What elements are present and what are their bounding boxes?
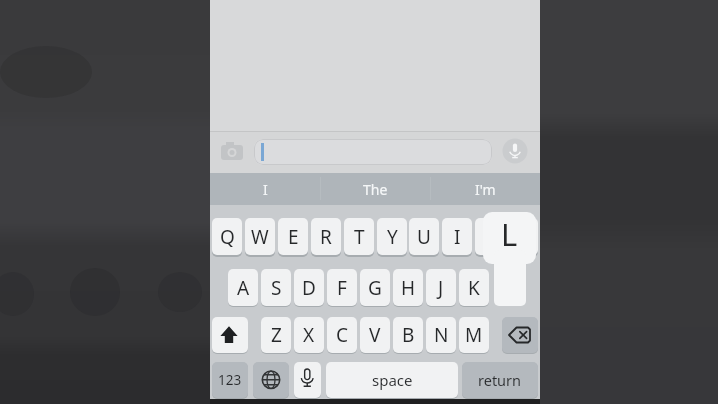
button[interactable]: X xyxy=(294,317,324,353)
button[interactable] xyxy=(254,139,492,165)
button[interactable] xyxy=(218,140,246,162)
button[interactable]: I xyxy=(210,173,320,205)
staticText: B xyxy=(402,322,415,348)
staticText: Z xyxy=(271,322,282,348)
button[interactable]: R xyxy=(311,218,341,255)
staticText: C xyxy=(336,322,349,348)
staticText: V xyxy=(369,322,381,348)
staticText: S xyxy=(271,275,282,301)
button[interactable]: U xyxy=(409,218,439,255)
staticText: I xyxy=(263,180,268,199)
button[interactable]: N xyxy=(426,317,456,353)
button[interactable]: D xyxy=(294,269,324,306)
button[interactable]: K xyxy=(459,269,489,306)
button[interactable]: I xyxy=(442,218,472,255)
staticText: U xyxy=(417,224,431,250)
button[interactable]: A xyxy=(228,269,258,306)
staticText: Q xyxy=(220,224,235,250)
button[interactable] xyxy=(294,362,321,398)
button[interactable]: P xyxy=(508,218,538,255)
button[interactable]: S xyxy=(261,269,291,306)
button[interactable]: B xyxy=(393,317,423,353)
staticText: F xyxy=(337,275,347,301)
button[interactable]: M xyxy=(459,317,489,353)
staticText: M xyxy=(465,322,483,348)
button[interactable]: Y xyxy=(377,218,407,255)
staticText: 123 xyxy=(218,371,242,389)
staticText: I'm xyxy=(475,180,496,199)
staticText: The xyxy=(363,180,388,199)
staticText: L xyxy=(501,213,518,255)
button[interactable]: J xyxy=(426,269,456,306)
staticText: I xyxy=(454,224,461,250)
staticText: A xyxy=(237,275,250,301)
staticText: E xyxy=(288,224,299,250)
staticText: J xyxy=(438,275,444,301)
staticText: X xyxy=(303,322,315,348)
button[interactable]: T xyxy=(344,218,374,255)
button[interactable]: The xyxy=(320,173,430,205)
button[interactable]: V xyxy=(360,317,390,353)
button[interactable] xyxy=(502,317,538,353)
staticText: W xyxy=(251,224,269,250)
button[interactable]: G xyxy=(360,269,390,306)
button[interactable]: E xyxy=(278,218,308,255)
button[interactable]: O xyxy=(475,218,505,255)
staticText: return xyxy=(478,370,522,390)
button[interactable]: H xyxy=(393,269,423,306)
button[interactable] xyxy=(253,362,289,398)
button[interactable]: 123 xyxy=(212,362,248,398)
button[interactable]: W xyxy=(245,218,275,255)
staticText: Y xyxy=(387,224,398,250)
staticText: T xyxy=(354,224,365,250)
staticText: D xyxy=(302,275,316,301)
staticText: space xyxy=(372,370,413,390)
button[interactable]: return xyxy=(462,362,538,398)
button[interactable]: C xyxy=(327,317,357,353)
button[interactable]: Q xyxy=(212,218,242,255)
button[interactable]: I'm xyxy=(430,173,540,205)
button[interactable] xyxy=(212,317,248,353)
staticText: G xyxy=(368,275,382,301)
button[interactable]: F xyxy=(327,269,357,306)
button[interactable]: space xyxy=(326,362,458,398)
staticText: R xyxy=(320,224,332,250)
staticText: H xyxy=(401,275,416,301)
staticText: N xyxy=(434,322,449,348)
button[interactable]: Z xyxy=(261,317,291,353)
button[interactable] xyxy=(502,138,528,164)
staticText: K xyxy=(468,275,480,301)
